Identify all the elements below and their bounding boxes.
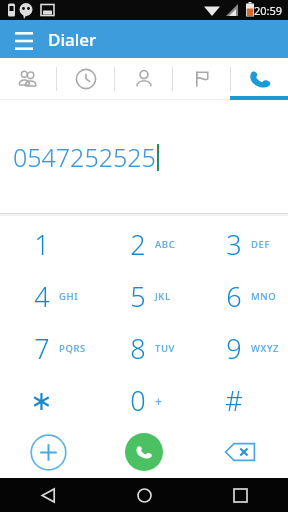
- button[interactable]: Back: [0, 478, 96, 512]
- staticText: 1: [34, 226, 50, 263]
- staticText: 6: [226, 278, 242, 315]
- button[interactable]: Call: [96, 426, 192, 478]
- button[interactable]: 8: [96, 322, 192, 374]
- button[interactable]: #: [192, 374, 288, 426]
- button[interactable]: Add contact: [0, 426, 96, 478]
- staticText: JKL: [155, 290, 171, 303]
- staticText: 4: [34, 278, 50, 315]
- button[interactable]: Groups: [0, 58, 56, 100]
- staticText: 7: [34, 330, 50, 367]
- staticText: 20:59: [254, 3, 283, 18]
- button[interactable]: Open navigation drawer: [8, 23, 40, 55]
- staticText: Dialer: [48, 28, 97, 51]
- button[interactable]: 4: [0, 270, 96, 322]
- button[interactable]: 7: [0, 322, 96, 374]
- staticText: MNO: [251, 290, 277, 303]
- staticText: 2: [130, 226, 146, 263]
- staticText: GHI: [59, 290, 79, 303]
- staticText: 0547252525: [13, 140, 156, 174]
- staticText: PQRS: [59, 342, 86, 355]
- staticText: 5: [130, 278, 146, 315]
- button[interactable]: Dialpad: [231, 58, 288, 100]
- staticText: #: [225, 382, 243, 419]
- staticText: DEF: [251, 238, 271, 251]
- staticText: WXYZ: [251, 342, 280, 355]
- staticText: ∗: [30, 385, 53, 416]
- button[interactable]: 5: [96, 270, 192, 322]
- staticText: 0: [130, 382, 146, 419]
- button[interactable]: Backspace: [192, 426, 288, 478]
- staticText: ABC: [155, 238, 176, 251]
- button[interactable]: 1: [0, 218, 96, 270]
- button[interactable]: Recents: [57, 58, 114, 100]
- staticText: TUV: [155, 342, 175, 355]
- button[interactable]: 3: [192, 218, 288, 270]
- button[interactable]: 0: [96, 374, 192, 426]
- button[interactable]: ∗: [0, 374, 96, 426]
- staticText: 9: [226, 330, 242, 367]
- staticText: 3: [226, 226, 242, 263]
- staticText: +: [155, 393, 163, 409]
- button[interactable]: 2: [96, 218, 192, 270]
- button[interactable]: 6: [192, 270, 288, 322]
- staticText: 8: [130, 330, 146, 367]
- button[interactable]: 9: [192, 322, 288, 374]
- button[interactable]: Home: [96, 478, 192, 512]
- button[interactable]: Flagged: [173, 58, 230, 100]
- button[interactable]: Recent apps: [192, 478, 288, 512]
- button[interactable]: Contacts: [115, 58, 172, 100]
